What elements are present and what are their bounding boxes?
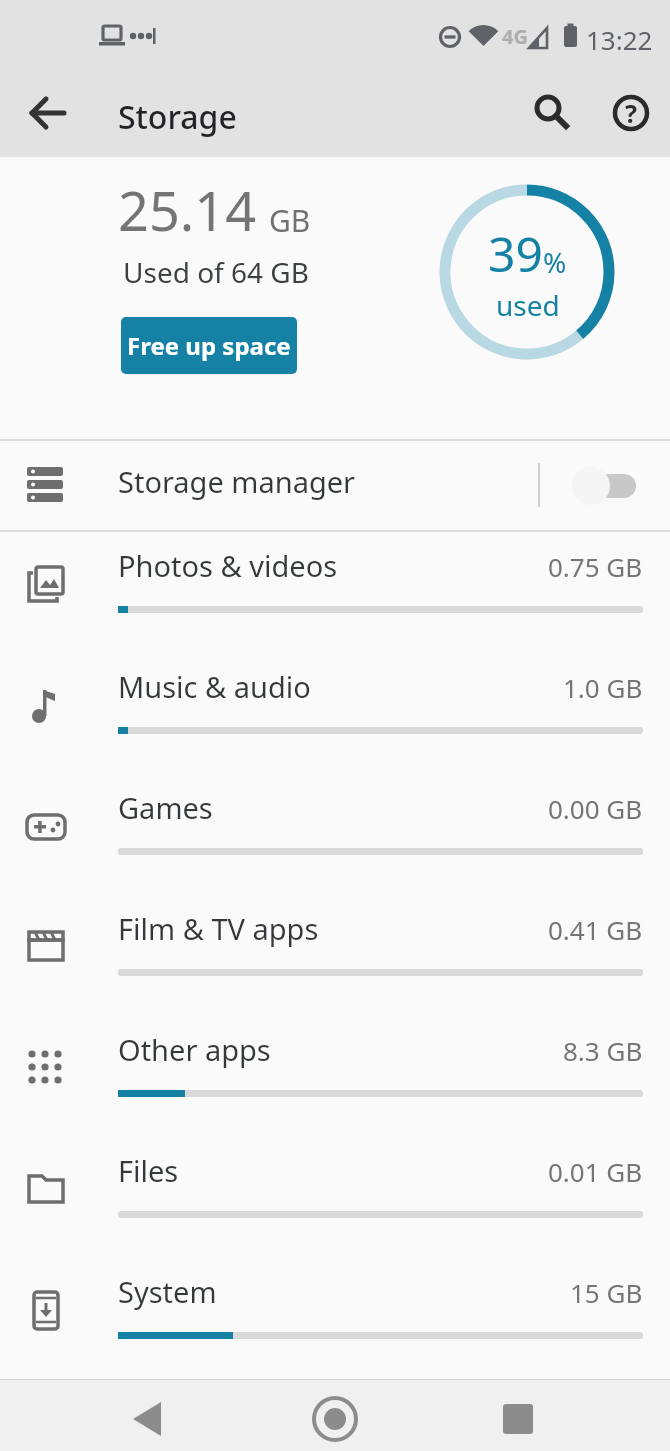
button[interactable]: Files [0, 1137, 670, 1258]
staticText: Photos & videos [118, 546, 338, 585]
button[interactable]: Music & audio [0, 653, 670, 774]
button[interactable]: Free up space [121, 317, 297, 374]
staticText: Film & TV apps [118, 909, 319, 948]
staticText: Used of 64 GB [123, 253, 309, 291]
button[interactable]: Photos & videos [0, 532, 670, 653]
staticText: Storage manager [118, 462, 356, 501]
button[interactable]: Games [0, 774, 670, 895]
staticText: used [496, 286, 560, 324]
button[interactable] [307, 1391, 363, 1447]
staticText: 0.41 GB [548, 912, 643, 947]
button[interactable]: Other apps [0, 1016, 670, 1137]
staticText: 39 [488, 221, 543, 286]
button[interactable] [120, 1391, 176, 1447]
button[interactable]: Film & TV apps [0, 895, 670, 1016]
staticText: 0.00 GB [548, 791, 643, 826]
staticText: GB [269, 200, 311, 241]
staticText: 25.14 [118, 173, 257, 247]
button[interactable] [490, 1391, 546, 1447]
staticText: 0.01 GB [548, 1154, 643, 1189]
button[interactable]: System [0, 1258, 670, 1379]
staticText: 4G [502, 23, 528, 50]
staticText: % [543, 243, 567, 281]
staticText: 13:22 [586, 22, 653, 57]
staticText: Other apps [118, 1030, 271, 1069]
button[interactable]: Storage manager [0, 441, 670, 530]
staticText: Files [118, 1151, 179, 1190]
button[interactable] [524, 85, 580, 141]
staticText: System [118, 1272, 217, 1311]
button[interactable]: ? [603, 85, 659, 141]
staticText: Storage [118, 95, 237, 139]
staticText: Music & audio [118, 667, 311, 706]
button[interactable] [572, 467, 642, 505]
staticText: Free up space [127, 329, 291, 362]
staticText: 0.75 GB [548, 549, 643, 584]
staticText: 1.0 GB [563, 670, 643, 705]
button[interactable] [20, 85, 76, 141]
staticText: 8.3 GB [563, 1033, 643, 1068]
staticText: ? [625, 96, 637, 130]
staticText: 15 GB [570, 1275, 643, 1310]
staticText: Games [118, 788, 213, 827]
